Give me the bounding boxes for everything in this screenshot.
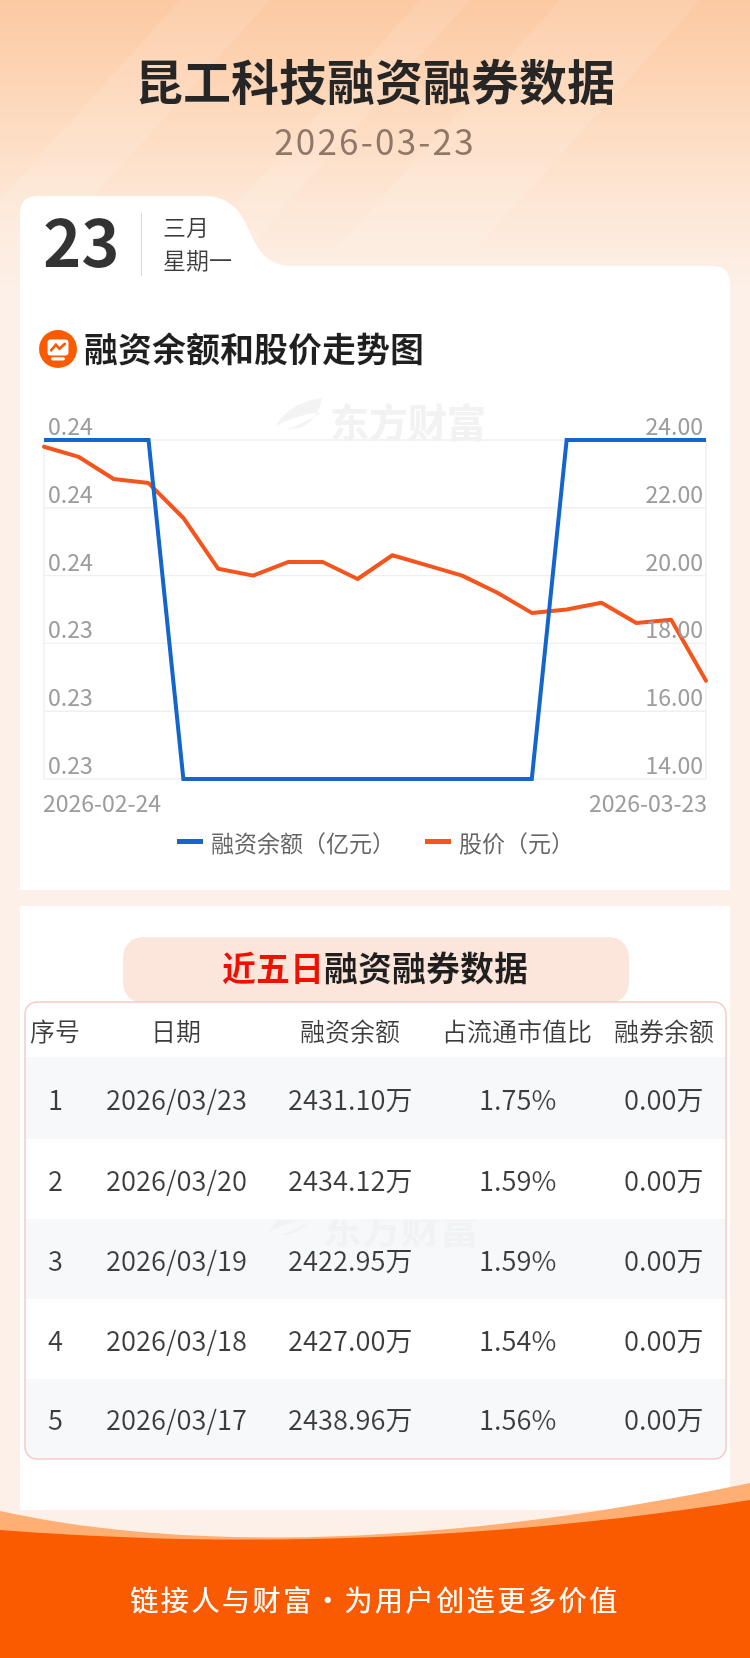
staticText: 0.23 [48, 679, 93, 712]
staticText: 东方财富 [330, 392, 487, 448]
staticText: 2427.00万 [288, 1320, 413, 1359]
staticText: 0.00万 [624, 1320, 704, 1359]
staticText: 0.24 [48, 408, 93, 441]
staticText: 融资余额（亿元） [211, 825, 395, 858]
staticText: 18.00 [0, 611, 703, 644]
staticText: 东方财富 [323, 1220, 480, 1254]
staticText: 链接人与财富·为用户创造更多价值 [0, 1579, 750, 1620]
staticText: 1.54% [479, 1320, 557, 1359]
staticText: 0.23 [48, 747, 93, 780]
staticText: 2026-03-23 [0, 785, 707, 818]
staticText: 2026/03/23 [106, 1079, 248, 1118]
staticText: 股价（元） [459, 825, 574, 858]
staticText: 4 [48, 1320, 63, 1359]
staticText: 日期 [151, 1012, 202, 1048]
staticText: 2422.95万 [288, 1240, 413, 1279]
staticText: 2431.10万 [288, 1079, 413, 1118]
staticText: 昆工科技融资融券数据 [0, 44, 750, 114]
staticText: 2026/03/18 [106, 1320, 248, 1359]
staticText: 三月 [163, 209, 209, 242]
staticText: 1.56% [479, 1399, 557, 1438]
staticText: 1 [48, 1079, 63, 1118]
staticText: 0.23 [48, 611, 93, 644]
staticText: 融资余额 [300, 1012, 401, 1048]
staticText: 星期一 [163, 242, 232, 275]
staticText: 0.24 [48, 476, 93, 509]
staticText: 融资余额和股价走势图 [84, 323, 424, 372]
staticText: 占流通市值比 [442, 1012, 593, 1048]
staticText: 融券余额 [614, 1012, 715, 1048]
staticText: 24.00 [0, 408, 703, 441]
staticText: 0.00万 [624, 1160, 704, 1199]
staticText: 2438.96万 [288, 1399, 413, 1438]
staticText: 1.59% [479, 1160, 557, 1199]
staticText: 2434.12万 [288, 1160, 413, 1199]
staticText: 23 [43, 192, 120, 286]
staticText: 0.00万 [624, 1399, 704, 1438]
staticText: 0.24 [48, 544, 93, 577]
staticText: 14.00 [0, 747, 703, 780]
staticText: 近五日融资融券数据 [20, 942, 730, 991]
staticText: 22.00 [0, 476, 703, 509]
staticText: 16.00 [0, 679, 703, 712]
staticText: 2026/03/17 [106, 1399, 248, 1438]
staticText: 20.00 [0, 544, 703, 577]
staticText: 2026/03/19 [106, 1240, 248, 1279]
staticText: 序号 [30, 1012, 81, 1048]
staticText: 1.75% [479, 1079, 557, 1118]
staticText: 2 [48, 1160, 63, 1199]
staticText: 1.59% [479, 1240, 557, 1279]
staticText: 2026-03-23 [0, 114, 750, 165]
staticText: 0.00万 [624, 1079, 704, 1118]
staticText: 3 [48, 1240, 63, 1279]
staticText: 2026-02-24 [43, 785, 162, 818]
staticText: 0.00万 [624, 1240, 704, 1279]
staticText: 2026/03/20 [106, 1160, 248, 1199]
staticText: 5 [48, 1399, 63, 1438]
